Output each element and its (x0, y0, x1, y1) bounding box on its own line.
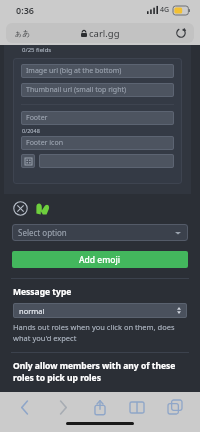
staticText: Add emoji (79, 254, 121, 266)
staticText: Footer (26, 113, 48, 123)
staticText: 0/25 fields (22, 46, 52, 54)
button[interactable] (39, 154, 174, 168)
button[interactable]: Reload (174, 26, 188, 40)
button[interactable]: Pick image (21, 154, 35, 168)
staticText: Image url (big at the bottom) (26, 66, 122, 76)
staticText: Thumbnail url (small top right) (26, 85, 127, 95)
button[interactable]: normal (13, 303, 187, 318)
staticText: Select option (18, 227, 67, 238)
staticText: 0/2048 (22, 127, 40, 134)
button[interactable]: Select option (12, 224, 188, 241)
staticText: Hands out roles when you click on them, … (13, 322, 186, 343)
staticText: Footer icon (26, 138, 64, 148)
staticText: Only allow members with any of these rol… (13, 360, 188, 384)
button[interactable]: ぁあ (6, 23, 194, 43)
button[interactable]: Image url (big at the bottom) (21, 64, 174, 78)
button[interactable]: Footer icon (21, 136, 174, 150)
staticText: 4G (160, 5, 170, 15)
button[interactable]: Add emoji (12, 251, 188, 268)
staticText: Message type (13, 286, 72, 298)
staticText: carl.gg (89, 27, 120, 40)
staticText: 0:36 (16, 4, 34, 16)
button[interactable]: Forward (51, 396, 75, 418)
button[interactable]: Footer (21, 111, 174, 125)
button[interactable]: Bookmarks (125, 396, 149, 418)
staticText: normal (19, 306, 45, 316)
button[interactable]: Tabs (163, 396, 187, 418)
staticText: ぁあ (14, 28, 31, 38)
button[interactable]: Share (88, 396, 112, 418)
button[interactable]: Remove emoji (13, 201, 28, 216)
button[interactable]: Thumbnail url (small top right) (21, 83, 174, 97)
button[interactable]: Back (13, 396, 37, 418)
